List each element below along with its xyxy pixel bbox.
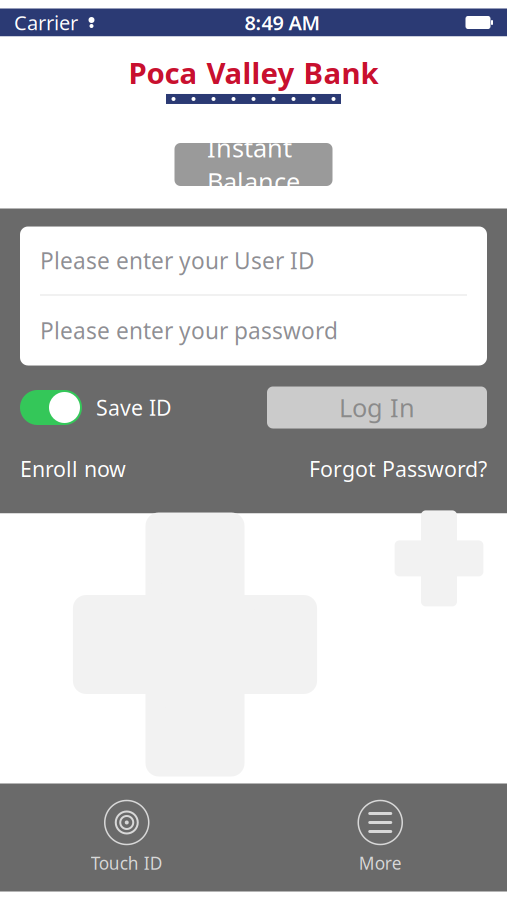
button[interactable]: Enroll now xyxy=(20,454,126,483)
button[interactable]: More xyxy=(320,800,440,874)
button[interactable]: Save ID xyxy=(20,390,172,425)
button[interactable]: Touch ID xyxy=(67,800,187,874)
button[interactable]: Log In xyxy=(267,386,487,428)
staticText: Carrier xyxy=(14,9,78,36)
staticText: Valley xyxy=(206,53,294,92)
staticText: Bank xyxy=(303,53,378,92)
staticText: Please enter your User ID xyxy=(40,245,315,275)
staticText: Forgot Password? xyxy=(309,454,487,483)
staticText: Save ID xyxy=(96,393,172,422)
staticText: Enroll now xyxy=(20,454,126,483)
button[interactable]: Forgot Password? xyxy=(309,454,487,483)
staticText: Instant Balance xyxy=(207,131,300,198)
button[interactable]: Instant Balance xyxy=(174,143,332,186)
staticText: Poca xyxy=(128,53,197,92)
staticText: 8:49 AM xyxy=(244,9,320,36)
staticText: Touch ID xyxy=(91,851,163,874)
staticText: More xyxy=(359,851,402,874)
staticText: Log In xyxy=(339,391,415,424)
staticText: Please enter your password xyxy=(40,315,338,345)
